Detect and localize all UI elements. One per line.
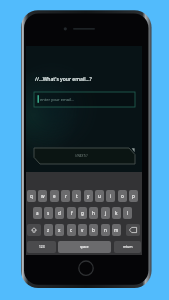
staticText: a xyxy=(36,210,39,216)
staticText: return xyxy=(123,245,133,249)
button[interactable]: t xyxy=(72,190,81,202)
staticText: t xyxy=(76,193,78,199)
button[interactable]: b xyxy=(89,224,98,236)
button[interactable]: l xyxy=(123,207,132,219)
staticText: //...What's your email...? xyxy=(35,76,92,83)
staticText: p xyxy=(132,193,135,199)
staticText: j xyxy=(105,210,107,216)
button[interactable]: o xyxy=(118,190,127,202)
button[interactable]: w xyxy=(38,190,47,202)
button[interactable]: z xyxy=(44,224,53,236)
button[interactable]: u xyxy=(95,190,104,202)
staticText: y xyxy=(87,193,90,199)
staticText: h xyxy=(92,210,95,216)
button[interactable]: y xyxy=(84,190,93,202)
staticText: enter your email... xyxy=(40,97,75,102)
button[interactable]: p xyxy=(129,190,138,202)
button[interactable]: Shift xyxy=(27,224,41,236)
staticText: u xyxy=(98,193,101,199)
staticText: c xyxy=(70,227,73,233)
button[interactable]: m xyxy=(112,224,121,236)
button[interactable]: g xyxy=(78,207,87,219)
button[interactable]: x xyxy=(55,224,64,236)
staticText: d xyxy=(58,210,61,216)
button[interactable]: Backspace xyxy=(126,224,140,236)
button[interactable]: 123 xyxy=(27,241,56,253)
staticText: l xyxy=(127,210,129,216)
button[interactable]: return xyxy=(114,241,141,253)
button[interactable]: space xyxy=(58,241,111,253)
button[interactable]: a xyxy=(33,207,42,219)
staticText: space xyxy=(80,245,89,249)
button[interactable]: v xyxy=(78,224,87,236)
button[interactable]: q xyxy=(27,190,36,202)
button[interactable]: s xyxy=(44,207,53,219)
staticText: q xyxy=(30,193,33,199)
button[interactable]: h xyxy=(89,207,98,219)
button[interactable]: //NEXT// xyxy=(34,148,135,164)
button[interactable]: r xyxy=(61,190,70,202)
staticText: b xyxy=(92,227,95,233)
staticText: s xyxy=(47,210,50,216)
staticText: e xyxy=(53,193,56,199)
staticText: f xyxy=(71,210,73,216)
staticText: 123 xyxy=(39,245,45,249)
staticText: x xyxy=(58,227,61,233)
button[interactable]: j xyxy=(101,207,110,219)
button[interactable]: n xyxy=(101,224,110,236)
staticText: z xyxy=(47,227,50,233)
staticText: r xyxy=(65,193,67,199)
staticText: k xyxy=(115,210,118,216)
button[interactable]: e xyxy=(50,190,59,202)
button[interactable]: d xyxy=(55,207,64,219)
button[interactable]: enter your email... xyxy=(34,92,135,107)
staticText: //NEXT// xyxy=(75,154,88,158)
staticText: n xyxy=(104,227,107,233)
staticText: g xyxy=(81,210,84,216)
staticText: m xyxy=(114,227,119,233)
button[interactable]: i xyxy=(106,190,115,202)
staticText: w xyxy=(41,193,45,199)
staticText: v xyxy=(81,227,84,233)
button[interactable]: k xyxy=(112,207,121,219)
staticText: i xyxy=(110,193,112,199)
button[interactable]: c xyxy=(67,224,76,236)
button[interactable]: f xyxy=(67,207,76,219)
staticText: o xyxy=(121,193,124,199)
